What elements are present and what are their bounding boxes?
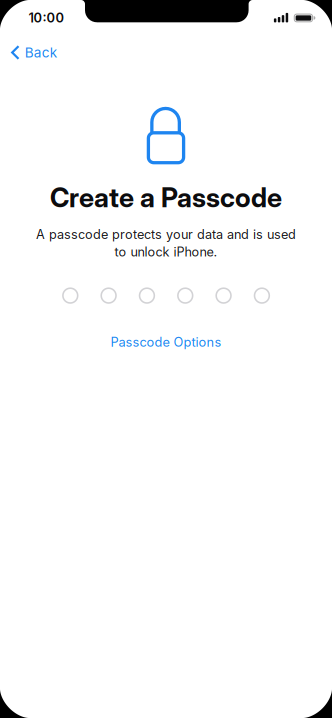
staticText: to unlock iPhone.	[114, 244, 217, 260]
staticText: 10:00	[28, 10, 64, 25]
staticText: A passcode protects your data and is use…	[36, 227, 296, 242]
button[interactable]: Back	[0, 36, 83, 68]
staticText: Create a Passcode	[50, 181, 282, 214]
staticText: Back	[25, 44, 57, 61]
staticText: Passcode Options	[110, 334, 221, 350]
button[interactable]: Passcode Options	[86, 329, 246, 355]
